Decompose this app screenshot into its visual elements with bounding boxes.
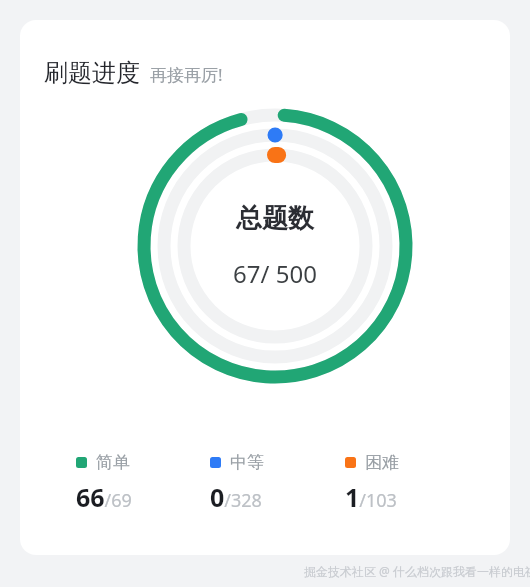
button[interactable]: 刷题进度 bbox=[20, 20, 510, 555]
staticText: 66/69 bbox=[76, 480, 132, 514]
staticText: 总题数 bbox=[236, 202, 314, 235]
other: 中等 bbox=[210, 457, 221, 468]
staticText: 中等 bbox=[230, 452, 264, 473]
button[interactable]: 中等 bbox=[210, 452, 345, 514]
staticText: 0/328 bbox=[210, 480, 262, 514]
staticText: 掘金技术社区 @ 什么档次跟我看一样的电视 bbox=[304, 563, 530, 579]
staticText: 67/ 500 bbox=[233, 257, 317, 290]
button[interactable]: 简单 bbox=[76, 452, 210, 514]
button[interactable]: 困难 bbox=[345, 452, 480, 514]
staticText: 困难 bbox=[365, 452, 399, 473]
staticText: 再接再厉! bbox=[150, 63, 223, 86]
staticText: 刷题进度 bbox=[44, 58, 140, 88]
other: 困难 bbox=[345, 457, 356, 468]
other: 简单 bbox=[76, 457, 87, 468]
staticText: 1/103 bbox=[345, 480, 397, 514]
staticText: 简单 bbox=[96, 452, 130, 473]
